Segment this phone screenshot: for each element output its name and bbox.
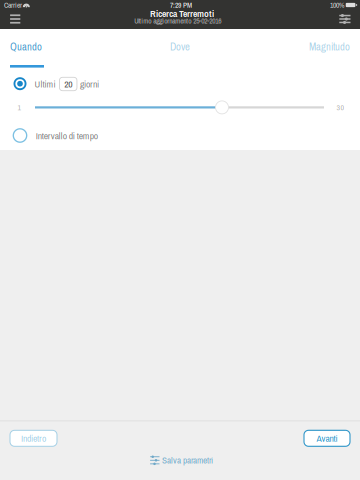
staticText: 100% (330, 0, 344, 10)
staticText: giorni (80, 77, 99, 90)
staticText: Ultimo aggiornamento 25-02-2016 (134, 16, 221, 26)
button[interactable]: Quando (0, 31, 90, 63)
staticText: Avanti (316, 432, 337, 445)
button[interactable]: Indietro (10, 430, 57, 446)
staticText: Dove (170, 39, 190, 54)
button[interactable]: Dove (135, 31, 225, 63)
staticText: Ultimi (34, 77, 55, 90)
staticText: 1 (17, 102, 21, 113)
staticText: Quando (10, 39, 42, 54)
staticText: Intervallo di tempo (36, 129, 98, 142)
staticText: Salva parametri (162, 454, 213, 466)
button[interactable]: Salva parametri (150, 454, 213, 467)
staticText: 20 (64, 77, 72, 90)
staticText: Carrier (4, 0, 22, 10)
button[interactable]: Menu (0, 8, 31, 30)
staticText: 7:29 PM (170, 0, 192, 10)
staticText: Indietro (21, 432, 46, 445)
staticText: Ricerca Terremoti (150, 7, 214, 20)
button[interactable]: Avanti (304, 430, 350, 446)
button[interactable]: Filtri (329, 8, 360, 30)
staticText: 30 (336, 102, 344, 113)
button[interactable]: Magnitudo (270, 31, 360, 63)
staticText: Magnitudo (309, 39, 350, 54)
